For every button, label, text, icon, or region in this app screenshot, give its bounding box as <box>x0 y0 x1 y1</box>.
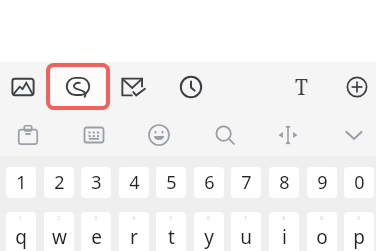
staticText: 5 <box>169 214 173 221</box>
staticText: 4 <box>132 214 136 221</box>
button[interactable]: Mail <box>116 69 152 105</box>
button[interactable]: 7 <box>231 212 261 251</box>
button[interactable]: 8 <box>269 212 299 251</box>
staticText: 2 <box>57 214 61 221</box>
staticText: 8 <box>282 214 286 221</box>
staticText: 2 <box>54 170 65 195</box>
button[interactable]: Search <box>207 117 243 153</box>
button[interactable]: 6 <box>194 167 224 198</box>
staticText: 3 <box>91 170 102 195</box>
staticText: 7 <box>244 214 248 221</box>
staticText: 1 <box>19 214 23 221</box>
button[interactable]: 0 <box>344 212 374 251</box>
button[interactable]: 7 <box>231 167 261 198</box>
button[interactable]: 4 <box>119 167 149 198</box>
button[interactable]: Keyboard <box>76 117 112 153</box>
button[interactable]: 9 <box>307 212 337 251</box>
staticText: 9 <box>317 170 328 195</box>
staticText: 0 <box>357 214 361 221</box>
button[interactable]: Emoji <box>141 117 177 153</box>
button[interactable]: 2 <box>44 212 74 251</box>
button[interactable]: 5 <box>156 167 186 198</box>
staticText: o <box>316 224 328 250</box>
button[interactable]: Image <box>5 69 41 105</box>
button[interactable]: 9 <box>307 167 337 198</box>
button[interactable]: 1 <box>6 167 36 198</box>
staticText: w <box>52 224 67 250</box>
button[interactable]: GIF <box>60 69 96 105</box>
staticText: 9 <box>320 214 324 221</box>
button[interactable]: Move cursor <box>270 117 306 153</box>
staticText: 5 <box>166 170 177 195</box>
staticText: p <box>353 224 365 250</box>
staticText: 8 <box>279 170 290 195</box>
button[interactable]: 0 <box>344 167 374 198</box>
staticText: 3 <box>94 214 98 221</box>
staticText: i <box>282 224 287 250</box>
staticText: 4 <box>129 170 140 195</box>
staticText: 0 <box>354 170 365 195</box>
staticText: 1 <box>16 170 27 195</box>
button[interactable]: 1 <box>6 212 36 251</box>
staticText: r <box>130 224 138 250</box>
button[interactable]: 5 <box>156 212 186 251</box>
button[interactable]: 3 <box>81 212 111 251</box>
button[interactable]: Clipboard <box>10 117 46 153</box>
staticText: q <box>15 224 27 250</box>
staticText: 7 <box>241 170 252 195</box>
staticText: T <box>295 73 308 102</box>
button[interactable]: 4 <box>119 212 149 251</box>
staticText: u <box>240 224 252 250</box>
staticText: e <box>91 224 102 250</box>
staticText: t <box>168 224 175 250</box>
button[interactable]: 8 <box>269 167 299 198</box>
staticText: 6 <box>204 170 215 195</box>
button[interactable]: Add <box>339 69 375 105</box>
button[interactable]: Clock <box>173 69 209 105</box>
button[interactable]: 6 <box>194 212 224 251</box>
staticText: 6 <box>207 214 211 221</box>
button[interactable]: 2 <box>44 167 74 198</box>
button[interactable]: Text formatting <box>283 69 319 105</box>
staticText: y <box>204 224 214 250</box>
button[interactable]: 3 <box>81 167 111 198</box>
button[interactable]: Collapse <box>336 117 372 153</box>
